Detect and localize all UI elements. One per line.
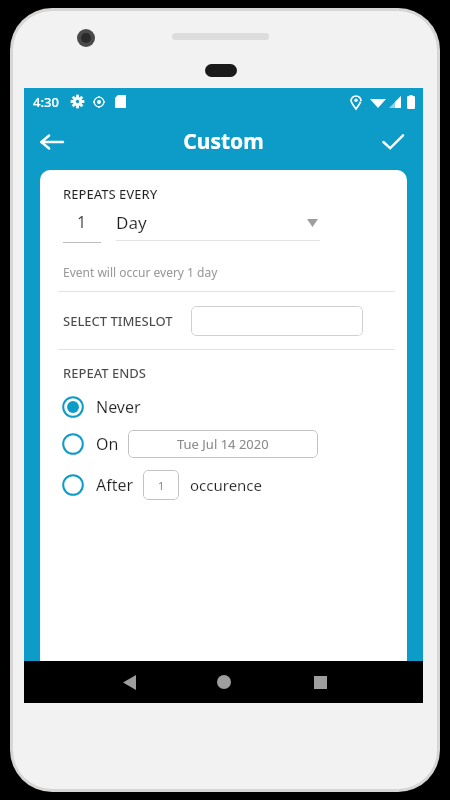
staticText: 4:30 bbox=[33, 93, 59, 111]
button[interactable]: After bbox=[40, 464, 407, 505]
button[interactable]: Back bbox=[30, 120, 74, 164]
staticText: 1 bbox=[77, 211, 87, 233]
staticText: On bbox=[96, 433, 119, 455]
staticText: REPEAT ENDS bbox=[63, 364, 146, 382]
button[interactable]: Confirm bbox=[371, 120, 415, 164]
staticText: Tue Jul 14 2020 bbox=[177, 435, 269, 453]
staticText: Never bbox=[96, 396, 141, 418]
button[interactable]: On bbox=[40, 423, 407, 464]
button[interactable]: SELECT TIMESLOT bbox=[40, 292, 407, 349]
staticText: Custom bbox=[183, 127, 264, 156]
button[interactable]: Day bbox=[116, 211, 320, 241]
staticText: Day bbox=[116, 211, 147, 234]
staticText: After bbox=[96, 474, 134, 496]
staticText: Event will occur every 1 day bbox=[63, 264, 218, 280]
button[interactable]: Home bbox=[207, 665, 241, 699]
staticText: REPEATS EVERY bbox=[63, 185, 158, 203]
button[interactable]: Never bbox=[40, 390, 407, 423]
staticText: occurence bbox=[190, 475, 263, 495]
button[interactable]: Recents bbox=[303, 665, 337, 699]
staticText: 1 bbox=[158, 478, 165, 493]
button[interactable]: Back bbox=[112, 665, 146, 699]
staticText: SELECT TIMESLOT bbox=[63, 312, 173, 330]
